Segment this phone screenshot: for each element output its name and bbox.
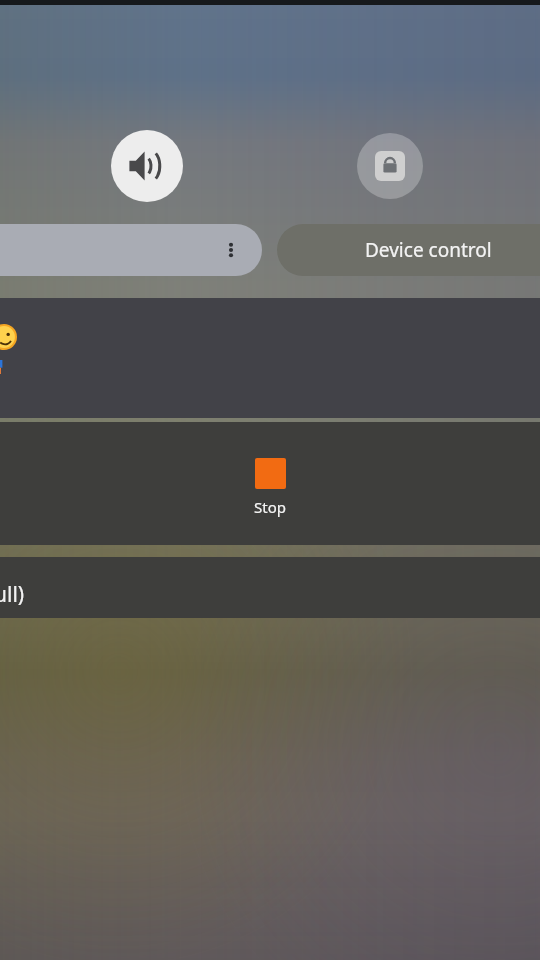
staticText: ull) [0,580,25,609]
button[interactable]: Device control [277,224,540,276]
staticText: Device control [365,237,492,263]
staticText: Stop [254,497,286,517]
button[interactable] [0,298,540,418]
button[interactable]: Lock [357,133,423,199]
button[interactable]: Stop [254,458,286,517]
button[interactable]: Volume [111,130,183,202]
button[interactable]: ull) [0,557,540,618]
other: More options [222,241,240,259]
button[interactable]: More options [0,224,262,276]
